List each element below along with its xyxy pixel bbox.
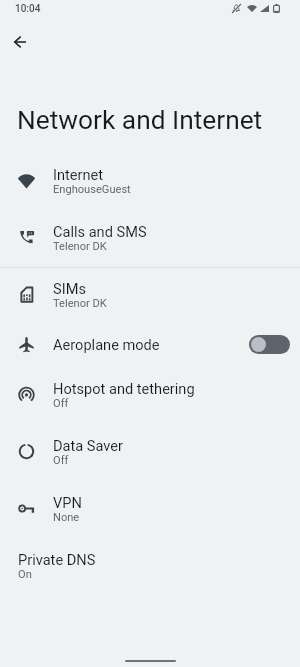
button[interactable]: Hotspot and tethering (0, 366, 300, 423)
button[interactable]: Calls and SMS (0, 209, 300, 266)
staticText: On (18, 568, 32, 581)
staticText: VPN (53, 494, 82, 511)
staticText: Network and Internet (17, 105, 263, 136)
button[interactable]: SIMs (0, 266, 300, 323)
button[interactable]: Private DNS (0, 537, 300, 594)
staticText: Hotspot and tethering (53, 380, 195, 397)
staticText: Private DNS (18, 551, 96, 568)
staticText: 10:04 (15, 3, 41, 15)
staticText: Off (53, 397, 69, 410)
button[interactable]: Internet (0, 152, 300, 209)
button[interactable]: VPN (0, 480, 300, 537)
staticText: Data Saver (53, 437, 124, 454)
staticText: Calls and SMS (53, 223, 147, 240)
button[interactable]: Back (0, 22, 40, 62)
button[interactable]: Aeroplane mode (0, 323, 300, 366)
staticText: Off (53, 454, 69, 467)
staticText: Telenor DK (53, 297, 107, 310)
staticText: Internet (53, 166, 104, 183)
button[interactable]: Aeroplane mode toggle (249, 335, 290, 354)
staticText: Telenor DK (53, 240, 107, 253)
staticText: EnghouseGuest (53, 183, 131, 196)
staticText: None (53, 511, 80, 524)
button[interactable]: Data Saver (0, 423, 300, 480)
staticText: Aeroplane mode (53, 336, 160, 353)
staticText: SIMs (53, 280, 86, 297)
